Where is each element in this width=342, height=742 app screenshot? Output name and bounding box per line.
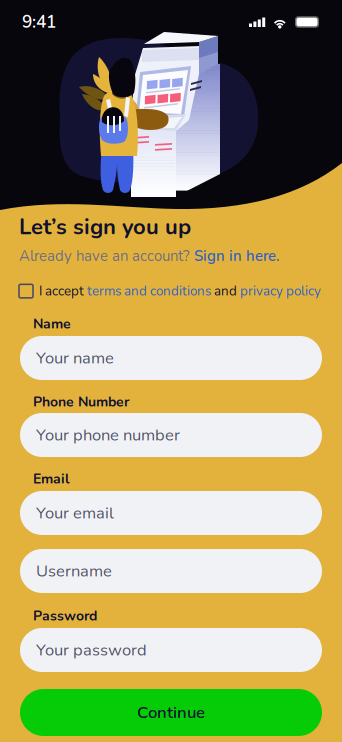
- staticText: Username: [36, 560, 112, 582]
- button[interactable]: Accept terms and conditions: [19, 284, 33, 298]
- staticText: and: [211, 282, 240, 300]
- staticText: Let’s sign you up: [19, 212, 191, 242]
- staticText: terms and conditions: [87, 282, 211, 300]
- staticText: Phone Number: [33, 392, 129, 412]
- button[interactable]: Sign in here.: [194, 246, 280, 266]
- staticText: 9:41: [22, 10, 56, 34]
- staticText: Your phone number: [36, 424, 180, 446]
- staticText: Your email: [36, 502, 114, 524]
- button[interactable]: Your phone number: [20, 413, 322, 457]
- button[interactable]: terms and conditions: [87, 282, 211, 300]
- button[interactable]: privacy policy: [240, 282, 321, 300]
- button[interactable]: Your name: [20, 336, 322, 380]
- button[interactable]: Your password: [20, 628, 322, 672]
- staticText: privacy policy: [240, 282, 321, 300]
- button[interactable]: Continue: [20, 689, 322, 736]
- staticText: Already have an account?: [19, 246, 194, 266]
- staticText: I accept: [33, 282, 87, 300]
- button[interactable]: Your email: [20, 491, 322, 535]
- staticText: Password: [33, 606, 97, 626]
- staticText: Your password: [36, 639, 147, 661]
- staticText: Sign in here.: [194, 246, 280, 266]
- button[interactable]: Username: [20, 549, 322, 593]
- staticText: Email: [33, 469, 69, 489]
- staticText: Name: [33, 314, 71, 334]
- staticText: Your name: [36, 347, 114, 369]
- staticText: Continue: [137, 701, 205, 724]
